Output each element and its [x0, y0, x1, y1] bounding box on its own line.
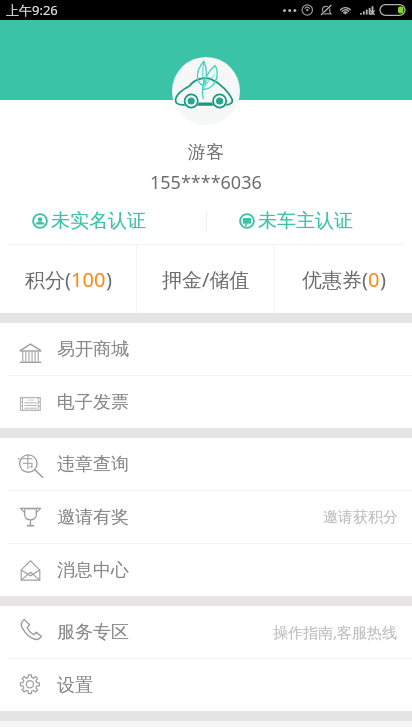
staticText: 违章查询: [57, 453, 129, 476]
staticText: 100: [71, 266, 106, 293]
staticText: ): [380, 266, 386, 293]
button[interactable]: 违章查询: [0, 438, 412, 490]
staticText: 邀请有奖: [57, 506, 129, 529]
staticText: 优惠券(: [302, 266, 368, 293]
button[interactable]: 易开商城: [0, 323, 412, 375]
button[interactable]: 优惠券(: [275, 245, 412, 313]
button[interactable]: 积分(: [0, 245, 136, 313]
button[interactable]: 邀请有奖: [0, 491, 412, 543]
staticText: 服务专区: [57, 621, 129, 644]
staticText: 电子发票: [57, 391, 129, 414]
staticText: 邀请获积分: [323, 508, 398, 527]
staticText: 0: [368, 266, 380, 293]
button[interactable]: 电子发票: [0, 376, 412, 428]
staticText: 押金/储值: [162, 266, 250, 293]
staticText: 未实名认证: [51, 209, 146, 233]
button[interactable]: 服务专区: [0, 606, 412, 658]
button[interactable]: 未实名认证: [32, 209, 146, 233]
staticText: 155****6036: [150, 170, 262, 195]
button[interactable]: 消息中心: [0, 544, 412, 596]
staticText: 游客: [188, 141, 224, 164]
staticText: 设置: [57, 674, 93, 697]
button[interactable]: 未车主认证: [239, 209, 353, 233]
staticText: ): [106, 266, 112, 293]
button[interactable]: 设置: [0, 659, 412, 711]
button[interactable]: 押金/储值: [137, 245, 274, 313]
staticText: 积分(: [25, 266, 71, 293]
staticText: 操作指南,客服热线: [273, 622, 398, 642]
staticText: 未车主认证: [258, 209, 353, 233]
staticText: 消息中心: [57, 559, 129, 582]
staticText: 上午9:26: [6, 1, 58, 19]
staticText: 易开商城: [57, 338, 129, 361]
